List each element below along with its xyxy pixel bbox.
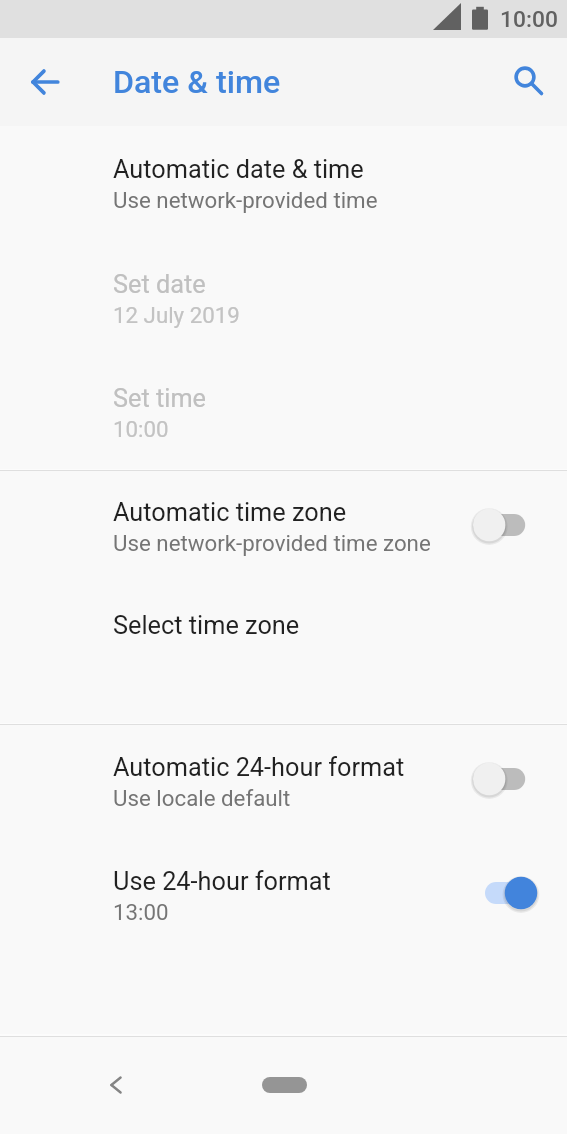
staticText: 10:00 — [113, 416, 169, 442]
other: Battery full — [472, 6, 488, 30]
staticText: Use network-provided time zone — [113, 530, 431, 556]
staticText: Automatic date & time — [113, 155, 364, 185]
button[interactable]: Home — [247, 1059, 321, 1111]
staticText: Automatic 24-hour format — [113, 753, 405, 783]
button[interactable]: Set time — [0, 384, 567, 488]
button[interactable]: Back — [88, 1057, 144, 1113]
staticText: Automatic time zone — [113, 498, 347, 528]
other: Signal strength — [433, 3, 461, 30]
button[interactable]: Automatic time zone — [457, 499, 541, 551]
staticText: 13:00 — [113, 899, 169, 925]
staticText: Use 24-hour format — [113, 867, 331, 897]
staticText: 12 July 2019 — [113, 302, 240, 328]
staticText: Date & time — [113, 63, 281, 101]
staticText: Use locale default — [113, 785, 291, 811]
button[interactable]: Search — [499, 51, 556, 108]
staticText: Set date — [113, 270, 206, 300]
staticText: Set time — [113, 384, 207, 414]
button[interactable]: Automatic 24-hour format — [0, 753, 567, 857]
staticText: Select time zone — [113, 611, 300, 641]
button[interactable]: Use 24-hour format — [0, 867, 567, 971]
button[interactable]: Use 24-hour format — [469, 867, 553, 919]
staticText: 10:00 — [500, 6, 558, 33]
staticText: Use network-provided time — [113, 187, 378, 213]
button[interactable]: Select time zone — [0, 611, 567, 681]
button[interactable]: Automatic date & time — [0, 155, 567, 259]
button[interactable]: Automatic 24-hour format — [457, 753, 541, 805]
button[interactable]: Navigate up — [16, 53, 73, 110]
button[interactable]: Automatic time zone — [0, 498, 567, 602]
button[interactable]: Set date — [0, 270, 567, 374]
